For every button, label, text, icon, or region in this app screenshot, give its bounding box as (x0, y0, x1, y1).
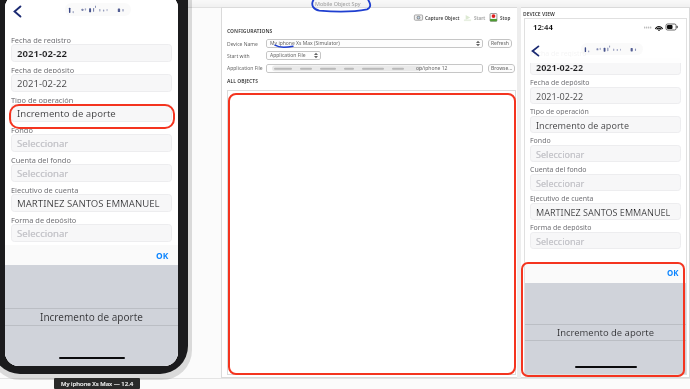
staticText: Incremento de aporte (536, 119, 629, 131)
button[interactable]: 2021-02-22 (530, 87, 681, 104)
button[interactable]: Back (528, 44, 543, 57)
staticText: OK (667, 268, 679, 279)
staticText: Seleccionar (17, 227, 69, 240)
staticText: Ejecutivo de cuenta (11, 185, 79, 193)
staticText: Start (474, 15, 486, 21)
button[interactable]: Capture Object (414, 13, 460, 22)
staticText: Stop (500, 15, 511, 21)
button[interactable]: 2021-02-22 (11, 44, 172, 62)
staticText: MARTINEZ SANTOS EMMANUEL (536, 206, 671, 218)
staticText: Device Name (227, 41, 258, 48)
staticText: Fecha de registro (530, 49, 587, 57)
staticText: Tipo de operación (530, 107, 589, 115)
staticText: DEVICE VIEW (523, 11, 555, 18)
staticText: Incremento de aporte (557, 326, 654, 339)
staticText: Seleccionar (17, 137, 69, 150)
staticText: Fondo (11, 125, 33, 133)
button[interactable]: MARTINEZ SANTOS EMMANUEL (530, 203, 681, 220)
button[interactable]: Application File (266, 51, 321, 60)
staticText: OK (156, 250, 169, 261)
button[interactable]: Browse... (488, 64, 515, 73)
button[interactable]: Stop (489, 13, 511, 22)
staticText: ALL OBJECTS (227, 78, 258, 85)
staticText: My iphone Xs Max — 12.4 (61, 380, 134, 388)
staticText: Application File (270, 52, 306, 59)
button[interactable]: My iphone Xs Max (Simulator) (266, 39, 483, 48)
button[interactable]: Seleccionar (530, 145, 681, 162)
staticText: Incremento de aporte (40, 310, 143, 324)
staticText: 2021-02-22 (536, 90, 584, 102)
staticText: Seleccionar (536, 148, 585, 160)
staticText: Fecha de depósito (11, 65, 75, 73)
staticText: Fecha de registro (11, 35, 71, 43)
button[interactable]: Seleccionar (530, 232, 681, 249)
staticText: Cuenta del fondo (11, 155, 71, 163)
button[interactable]: 2021-02-22 (11, 74, 172, 92)
button[interactable]: Incremento de aporte (530, 116, 681, 133)
button[interactable]: Back (9, 4, 25, 18)
button[interactable]: Generate (187, 186, 215, 197)
button[interactable]: 2021-02-22 (530, 58, 681, 75)
staticText: Forma de depósito (11, 215, 77, 223)
button[interactable]: Incremento de aporte (557, 326, 654, 339)
staticText: Tipo de operación (11, 95, 74, 103)
staticText: ementTyp... (186, 286, 212, 292)
staticText: Cuenta del fondo (530, 165, 587, 173)
staticText: MARTINEZ SANTOS EMMANUEL (17, 197, 160, 210)
button[interactable]: Refresh (488, 39, 512, 48)
button[interactable]: Seleccionar (11, 164, 172, 182)
staticText: Forma de depósito (530, 223, 592, 231)
staticText: Seleccionar (536, 177, 585, 189)
staticText: 2021-02-22 (17, 77, 68, 90)
staticText: My iphone Xs Max (Simulator) (270, 40, 340, 47)
staticText: Generate (191, 189, 211, 195)
staticText: Seleccionar (536, 235, 585, 247)
staticText: Browse... (491, 65, 513, 72)
button[interactable]: Highlight (189, 341, 215, 352)
button[interactable]: Incremento de aporte (40, 310, 143, 324)
staticText: Incremento de aporte (17, 107, 116, 120)
staticText: Fecha de depósito (530, 78, 590, 86)
staticText: Mobile Object Spy (315, 0, 361, 7)
button[interactable]: Start (463, 13, 486, 22)
button[interactable]: op/iphone 12 (266, 64, 483, 73)
staticText: Ejecutivo de cuenta (530, 194, 594, 202)
button[interactable]: MARTINEZ SANTOS EMMANUEL (11, 194, 172, 212)
staticText: Application File (227, 65, 263, 72)
button[interactable]: Seleccionar (11, 134, 172, 152)
button[interactable]: Seleccionar (11, 224, 172, 242)
staticText: op/iphone 12 (416, 65, 448, 72)
button[interactable]: Seleccionar (530, 174, 681, 191)
staticText: CONFIGURATIONS (227, 28, 273, 35)
staticText: Fondo (530, 136, 551, 144)
staticText: Refresh (491, 40, 509, 47)
staticText: Capture Object (425, 15, 460, 21)
staticText: 2021-02-22 (17, 47, 68, 60)
staticText: 12:44 (533, 22, 553, 33)
staticText: 2021-02-22 (536, 61, 584, 73)
button[interactable]: OK (524, 264, 687, 283)
staticText: Seleccionar (17, 167, 69, 180)
staticText: Start with (227, 53, 250, 60)
button[interactable]: OK (5, 245, 178, 265)
button[interactable]: Incremento de aporte (11, 104, 172, 122)
